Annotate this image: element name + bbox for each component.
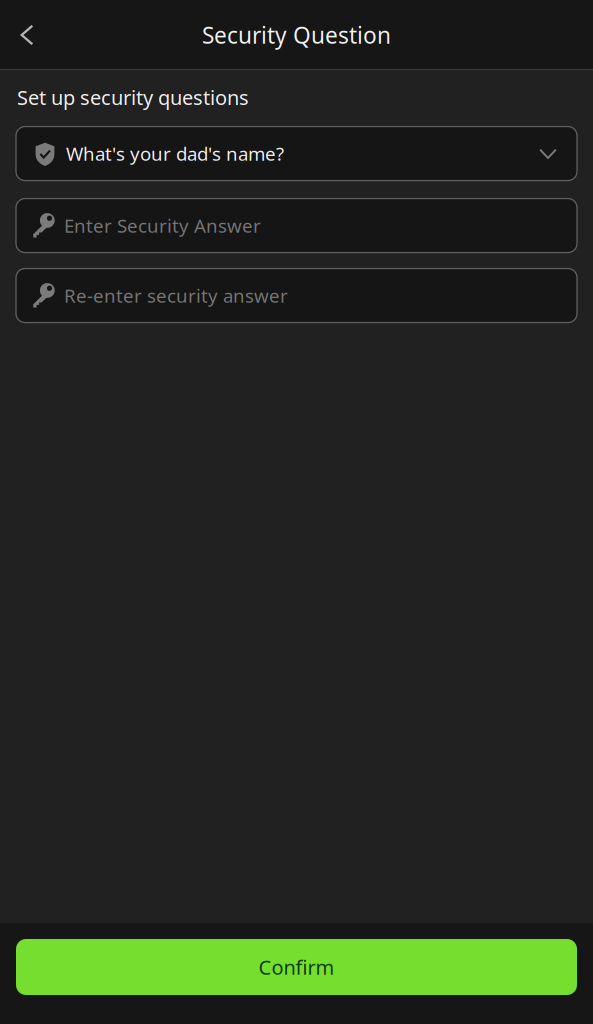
staticText: Re-enter security answer [64, 283, 288, 308]
button[interactable]: Back [4, 12, 50, 58]
staticText: Enter Security Answer [64, 213, 261, 238]
button[interactable]: Enter Security Answer [16, 199, 577, 253]
button[interactable]: Re-enter security answer [16, 269, 577, 323]
staticText: Security Question [202, 20, 391, 50]
staticText: Set up security questions [17, 84, 249, 111]
staticText: What's your dad's name? [66, 141, 284, 166]
button[interactable]: What's your dad's name? [16, 127, 577, 181]
staticText: Confirm [258, 954, 334, 980]
button[interactable]: Confirm [16, 939, 577, 995]
